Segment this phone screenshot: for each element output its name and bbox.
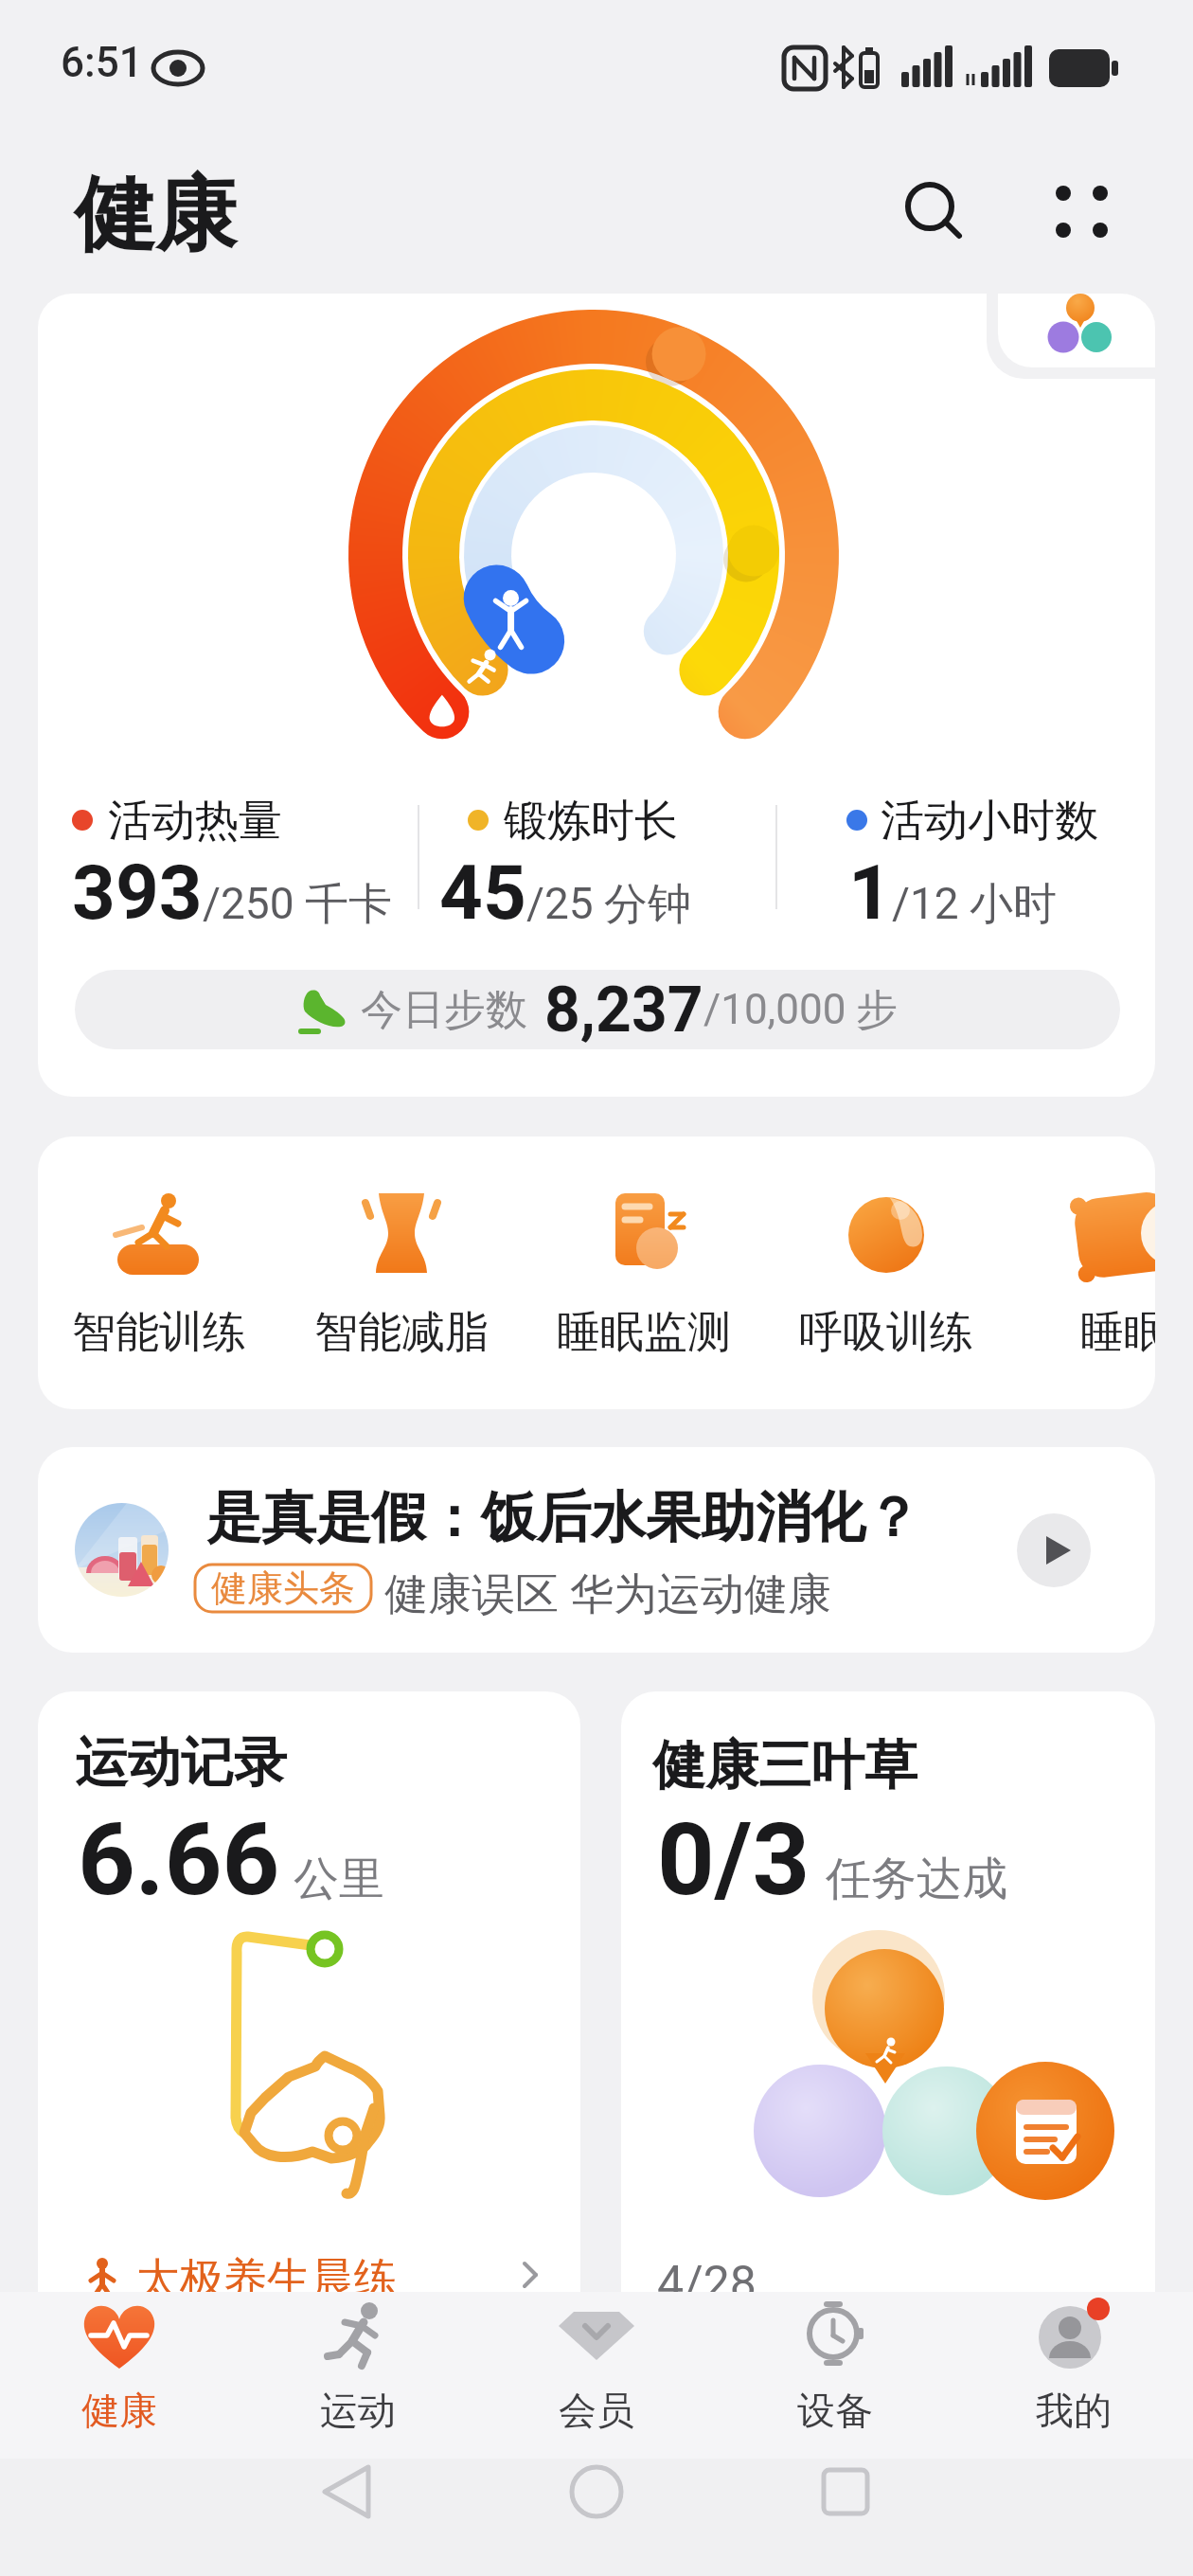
staticText: 太极养生晨练	[136, 2252, 398, 2292]
staticText: 0/3	[657, 1801, 810, 1919]
button[interactable]: 是真是假：饭后水果助消化？	[38, 1447, 1155, 1653]
staticText: /25 分钟	[526, 877, 692, 932]
staticText: 健康	[74, 164, 237, 266]
button[interactable]: 设备	[716, 2292, 954, 2459]
staticText: 任务达成	[826, 1851, 1007, 1907]
staticText: 8,237	[544, 974, 703, 1046]
button[interactable]	[888, 167, 971, 250]
button[interactable]: 睡眠	[1007, 1136, 1155, 1409]
button[interactable]	[1040, 167, 1123, 250]
button[interactable]	[998, 294, 1155, 367]
staticText: 睡眠	[1080, 1305, 1155, 1360]
staticText: 我的	[1036, 2387, 1112, 2434]
staticText: 6.66	[78, 1801, 280, 1919]
staticText: /12 小时	[892, 877, 1058, 932]
staticText: 呼吸训练	[799, 1305, 973, 1360]
staticText: 智能减脂	[314, 1305, 489, 1360]
staticText: 活动小时数	[881, 794, 1098, 849]
button[interactable]: 会员	[477, 2292, 716, 2459]
staticText: 锻炼时长	[504, 794, 678, 849]
staticText: 1	[848, 849, 892, 938]
staticText: 设备	[797, 2387, 873, 2434]
staticText: 活动热量	[108, 794, 282, 849]
button[interactable]: 我的	[954, 2292, 1193, 2459]
button[interactable]: 健康	[0, 2292, 239, 2459]
staticText: 45	[439, 849, 526, 938]
staticText: 运动	[320, 2387, 396, 2434]
button[interactable]	[1017, 1513, 1091, 1587]
staticText: /10,000 步	[703, 984, 899, 1036]
staticText: /250 千卡	[203, 877, 392, 932]
button[interactable]: 运动	[239, 2292, 477, 2459]
staticText: 会员	[559, 2387, 634, 2434]
staticText: 今日步数	[361, 984, 527, 1036]
staticText: 公里	[294, 1851, 384, 1907]
staticText: 4/28	[657, 2256, 757, 2292]
staticText: 健康误区 华为运动健康	[384, 1563, 831, 1622]
staticText: 是真是假：饭后水果助消化？	[206, 1483, 920, 1552]
button[interactable]: 呼吸训练	[765, 1136, 1007, 1409]
staticText: 健康三叶草	[652, 1732, 917, 1799]
staticText: 健康	[81, 2387, 157, 2434]
button[interactable]: 运动记录	[38, 1691, 580, 2292]
button[interactable]: 健康三叶草	[621, 1691, 1155, 2292]
staticText: 睡眠监测	[557, 1305, 731, 1360]
staticText: 运动记录	[75, 1729, 287, 1797]
button[interactable]: 今日步数	[75, 970, 1120, 1049]
button[interactable]: 智能减脂	[280, 1136, 523, 1409]
staticText: 393	[72, 849, 203, 938]
button[interactable]: 活动热量	[38, 294, 1155, 1097]
staticText: 6:51	[61, 38, 143, 87]
staticText: 健康头条	[211, 1565, 355, 1611]
button[interactable]: 智能训练	[38, 1136, 280, 1409]
staticText: 智能训练	[72, 1305, 246, 1360]
button[interactable]: 睡眠监测	[523, 1136, 765, 1409]
